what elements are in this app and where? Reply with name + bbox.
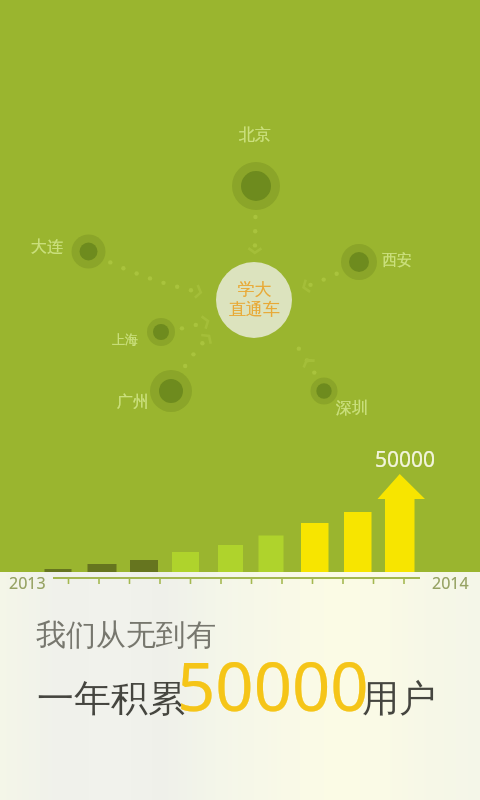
button[interactable]: 广州 [117,392,149,412]
staticText: 一年积累 [37,675,185,722]
staticText: 北京 [239,125,271,145]
button[interactable]: 深圳 [336,398,368,418]
staticText: 50000 [375,445,436,474]
staticText: 广州 [117,392,149,412]
button[interactable]: 大连 [71,234,106,269]
button[interactable]: 北京 [232,162,280,210]
staticText: 我们从无到有 [36,616,216,654]
button[interactable]: 西安 [341,244,377,280]
button[interactable]: 上海 [112,331,138,347]
button[interactable]: 西安 [382,251,412,270]
staticText: 上海 [112,331,138,347]
button[interactable]: 深圳 [310,377,337,404]
staticText: 大连 [31,237,63,257]
staticText: 深圳 [336,398,368,418]
staticText: 2014 [432,572,469,594]
button[interactable]: 大连 [31,237,63,257]
staticText: 2013 [9,572,46,594]
staticText: 学大 直通车 [229,279,280,320]
button[interactable]: 上海 [147,318,175,346]
button[interactable]: 50000 [375,445,436,474]
button[interactable]: 学大 直通车 [216,262,292,338]
staticText: 用户 [362,675,436,722]
staticText: 50000 [177,639,369,730]
button[interactable]: 广州 [150,370,192,412]
staticText: 西安 [382,251,412,270]
button[interactable]: 北京 [239,125,271,145]
